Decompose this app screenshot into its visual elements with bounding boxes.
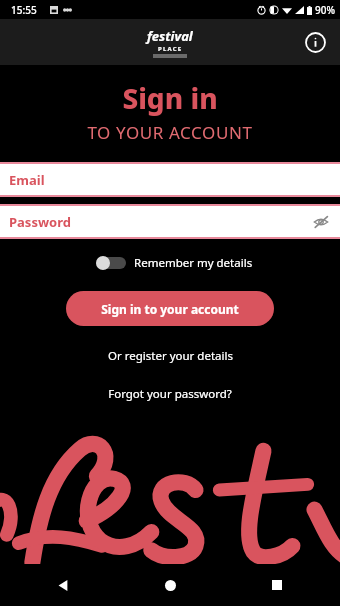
staticText: Remember my details: [134, 255, 253, 271]
button[interactable]: Recent apps: [262, 570, 292, 600]
button[interactable]: Home: [155, 570, 185, 600]
button[interactable]: Back: [48, 570, 78, 600]
staticText: PLACE: [158, 45, 183, 53]
staticText: Password: [9, 213, 71, 231]
button[interactable]: Remember my details: [96, 255, 340, 271]
staticText: TO YOUR ACCOUNT: [87, 121, 253, 144]
button[interactable]: Forgot your password?: [102, 384, 238, 404]
button[interactable]: Information: [298, 25, 332, 59]
staticText: Email: [9, 171, 45, 189]
staticText: Or register your details: [108, 348, 233, 364]
button[interactable]: Show password: [308, 209, 334, 235]
staticText: Sign in to your account: [101, 301, 239, 317]
button[interactable]: Password: [0, 204, 340, 239]
staticText: festival: [147, 27, 193, 45]
staticText: Forgot your password?: [108, 386, 232, 402]
button[interactable]: Or register your details: [102, 346, 239, 366]
staticText: 90%: [315, 3, 335, 17]
staticText: 15:55: [11, 3, 37, 17]
button[interactable]: Sign in to your account: [66, 291, 274, 326]
button[interactable]: Email: [0, 162, 340, 197]
staticText: Sign in: [122, 79, 218, 117]
